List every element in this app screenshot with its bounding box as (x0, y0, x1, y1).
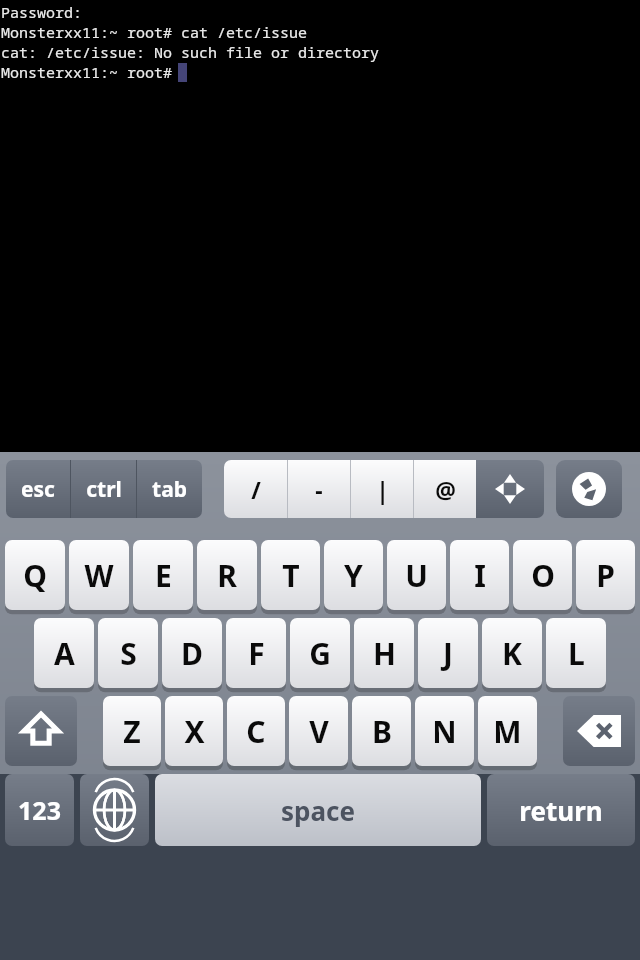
button[interactable]: return (487, 774, 635, 846)
button[interactable]: P (576, 540, 635, 610)
button[interactable]: F (226, 618, 286, 688)
staticText: / (251, 474, 261, 505)
button[interactable]: E (133, 540, 193, 610)
staticText: - (315, 474, 323, 505)
button[interactable]: C (227, 696, 285, 766)
button[interactable]: Switch keyboard (556, 460, 622, 518)
staticText: M (493, 711, 522, 752)
staticText: @ (435, 474, 456, 505)
button[interactable]: Y (324, 540, 383, 610)
staticText: Monsterxx11:~ root# (1, 62, 182, 82)
button[interactable]: A (34, 618, 94, 688)
button[interactable]: W (69, 540, 129, 610)
staticText: H (373, 633, 396, 674)
staticText: cat: /etc/issue: No such file or directo… (1, 42, 380, 62)
staticText: Y (344, 555, 363, 596)
button[interactable]: Arrow keys (476, 460, 544, 518)
button[interactable]: L (546, 618, 606, 688)
button[interactable]: Shift (5, 696, 77, 766)
button[interactable]: N (415, 696, 474, 766)
staticText: ctrl (86, 475, 122, 504)
button[interactable]: tab (137, 460, 202, 518)
button[interactable]: H (354, 618, 414, 688)
staticText: U (405, 555, 428, 596)
button[interactable]: J (418, 618, 478, 688)
button[interactable]: G (290, 618, 350, 688)
button[interactable]: T (261, 540, 320, 610)
button[interactable]: S (98, 618, 158, 688)
staticText: X (184, 711, 205, 752)
staticText: C (246, 711, 266, 752)
staticText: P (596, 555, 615, 596)
staticText: L (568, 633, 585, 674)
staticText: space (281, 793, 355, 828)
staticText: Z (123, 711, 141, 752)
button[interactable]: K (482, 618, 542, 688)
button[interactable]: space (155, 774, 481, 846)
button[interactable]: D (162, 618, 222, 688)
staticText: Password: (1, 2, 83, 22)
staticText: return (519, 793, 603, 828)
button[interactable]: M (478, 696, 537, 766)
staticText: esc (21, 475, 55, 504)
button[interactable]: / (224, 460, 287, 518)
button[interactable]: I (450, 540, 509, 610)
staticText: R (217, 555, 237, 596)
staticText: E (155, 555, 172, 596)
staticText: N (432, 711, 457, 752)
button[interactable]: O (513, 540, 572, 610)
staticText: tab (152, 475, 187, 504)
staticText: D (181, 633, 203, 674)
button[interactable]: esc (6, 460, 70, 518)
staticText: I (474, 555, 486, 596)
button[interactable]: @ (414, 460, 476, 518)
button[interactable]: R (197, 540, 257, 610)
staticText: J (443, 633, 453, 674)
button[interactable]: Backspace (563, 696, 635, 766)
staticText: Monsterxx11:~ root# cat /etc/issue (1, 22, 308, 42)
staticText: S (120, 633, 137, 674)
staticText: O (531, 555, 555, 596)
staticText: | (376, 474, 389, 505)
button[interactable]: X (165, 696, 223, 766)
button[interactable]: B (352, 696, 411, 766)
staticText: T (282, 555, 300, 596)
button[interactable]: 123 (5, 774, 74, 846)
button[interactable]: V (289, 696, 348, 766)
button[interactable]: Z (103, 696, 161, 766)
staticText: V (309, 711, 329, 752)
staticText: F (248, 633, 265, 674)
staticText: K (502, 633, 522, 674)
staticText: G (309, 633, 331, 674)
staticText: A (54, 633, 75, 674)
button[interactable]: Next keyboard (80, 774, 149, 846)
button[interactable]: | (351, 460, 413, 518)
button[interactable]: ctrl (71, 460, 136, 518)
staticText: B (372, 711, 392, 752)
button[interactable]: - (288, 460, 350, 518)
staticText: 123 (18, 793, 61, 827)
button[interactable]: U (387, 540, 446, 610)
staticText: W (84, 555, 114, 596)
button[interactable]: Q (5, 540, 65, 610)
staticText: Q (23, 555, 47, 596)
